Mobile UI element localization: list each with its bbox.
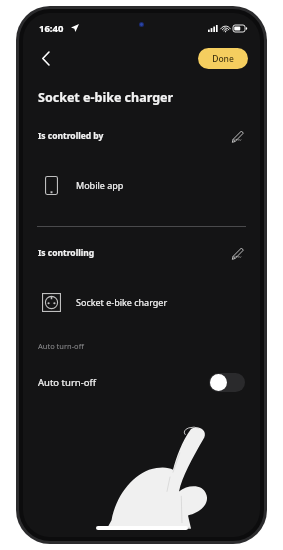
staticText: Auto turn-off (38, 376, 97, 389)
button[interactable]: Is controlling (23, 243, 260, 263)
button[interactable]: Auto turn-off (23, 367, 260, 397)
staticText: Auto turn-off (38, 341, 84, 351)
button[interactable]: Done (198, 48, 248, 69)
button[interactable]: Auto turn-off toggle (209, 373, 245, 392)
staticText: Mobile app (76, 179, 124, 191)
staticText: Is controlled by (38, 130, 104, 142)
other: Edit Is controlled by (228, 127, 246, 145)
button[interactable]: Is controlled by (23, 126, 260, 146)
staticText: Done (212, 53, 234, 65)
staticText: 16:40 (39, 22, 64, 35)
button[interactable]: Socket e-bike charger (23, 285, 260, 319)
staticText: Is controlling (38, 247, 95, 259)
button[interactable]: Back (31, 44, 59, 72)
staticText: Socket e-bike charger (76, 296, 168, 308)
staticText: Socket e-bike charger (38, 89, 174, 106)
button[interactable]: Mobile app (23, 168, 260, 202)
other: Edit Is controlling (228, 244, 246, 262)
